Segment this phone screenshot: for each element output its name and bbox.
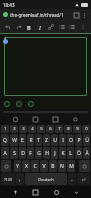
button[interactable]: Bold — [24, 22, 34, 32]
button[interactable]: Overflow — [78, 22, 88, 32]
button[interactable]: X — [22, 160, 30, 172]
button[interactable]: D — [19, 147, 26, 159]
button[interactable]: V — [40, 160, 48, 172]
button[interactable]: Action 1 — [4, 101, 10, 107]
button[interactable]: H — [43, 147, 50, 159]
button[interactable]: 2 — [10, 125, 18, 133]
staticText: 4 — [31, 126, 34, 132]
button[interactable]: Action 3 — [28, 101, 34, 107]
button[interactable]: C — [31, 160, 39, 172]
button[interactable]: N — [58, 160, 66, 172]
button[interactable]: Italic — [35, 22, 45, 32]
button[interactable]: 6 — [46, 125, 54, 133]
staticText: X — [25, 163, 28, 170]
button[interactable]: Link — [46, 22, 56, 32]
button[interactable]: Y — [14, 160, 21, 172]
staticText: 2 — [13, 126, 16, 132]
button[interactable]: M — [67, 160, 75, 172]
button[interactable]: Undo — [3, 22, 13, 32]
button[interactable]: R — [27, 134, 34, 146]
button[interactable]: T — [35, 134, 42, 146]
button[interactable]: . — [68, 173, 76, 185]
staticText: Ö — [77, 150, 81, 157]
staticText: , — [19, 176, 21, 183]
button[interactable] — [4, 37, 87, 96]
button[interactable]: Ü — [83, 134, 90, 146]
staticText: W — [12, 137, 17, 144]
button[interactable]: Redo — [14, 22, 24, 32]
button[interactable]: Clipboard — [51, 115, 60, 124]
staticText: P — [77, 137, 81, 144]
button[interactable]: Settings — [71, 115, 80, 124]
button[interactable]: Recents — [30, 187, 40, 197]
button[interactable]: Q — [1, 134, 9, 146]
button[interactable]: Emoji — [11, 115, 20, 124]
staticText: 0 — [85, 126, 88, 132]
button[interactable]: P — [75, 134, 82, 146]
button[interactable]: Home — [51, 187, 61, 197]
staticText: B — [51, 163, 55, 170]
staticText: 9 — [76, 126, 79, 132]
staticText: Deutsch — [38, 177, 54, 182]
staticText: T — [37, 137, 40, 144]
button[interactable]: I — [59, 134, 66, 146]
button[interactable]: G — [35, 147, 42, 159]
button[interactable]: More options — [80, 11, 88, 19]
staticText: L — [69, 150, 72, 157]
staticText: U — [53, 137, 57, 144]
button[interactable]: 5 — [37, 125, 45, 133]
staticText: O — [69, 137, 73, 144]
button[interactable]: , — [16, 173, 24, 185]
staticText: S — [13, 150, 16, 157]
button[interactable]: GIF — [31, 115, 40, 124]
button[interactable]: 9 — [73, 125, 81, 133]
button[interactable]: Backspace — [79, 160, 90, 172]
button[interactable]: A — [1, 147, 9, 159]
staticText: 3 — [22, 126, 25, 132]
button[interactable]: E — [19, 134, 26, 146]
button[interactable]: Z — [43, 134, 50, 146]
staticText: 18:43 — [3, 2, 15, 8]
button[interactable]: Tabs — [72, 11, 80, 19]
staticText: V — [42, 163, 46, 170]
button[interactable]: Ö — [75, 147, 82, 159]
button[interactable]: L — [67, 147, 74, 159]
button[interactable]: 4 — [28, 125, 36, 133]
button[interactable]: W — [10, 134, 18, 146]
button[interactable]: 0 — [82, 125, 90, 133]
button[interactable]: K — [59, 147, 66, 159]
button[interactable]: Deutsch — [25, 173, 67, 185]
button[interactable]: B — [49, 160, 57, 172]
button[interactable]: Ä — [83, 147, 90, 159]
button[interactable]: 8 — [64, 125, 72, 133]
staticText: F — [29, 150, 32, 157]
staticText: J — [54, 150, 56, 157]
button[interactable]: Enter — [77, 173, 90, 185]
staticText: H — [45, 150, 49, 157]
staticText: C — [33, 163, 37, 170]
button[interactable]: Action 2 — [16, 101, 22, 107]
button[interactable]: ?123 — [1, 173, 15, 185]
button[interactable]: 1 — [1, 125, 9, 133]
button[interactable]: 7 — [55, 125, 63, 133]
staticText: 8 — [67, 126, 70, 132]
staticText: 6 — [49, 126, 52, 132]
button[interactable]: J — [51, 147, 58, 159]
staticText: I — [62, 137, 64, 144]
button[interactable]: Back — [71, 187, 81, 197]
staticText: B — [27, 24, 31, 31]
button[interactable]: Voice input — [10, 187, 20, 197]
button[interactable]: F — [27, 147, 34, 159]
staticText: Q — [3, 137, 7, 144]
staticText: A — [3, 150, 7, 157]
button[interactable]: Bulleted list — [57, 22, 67, 32]
button[interactable]: Shift — [1, 160, 11, 172]
button[interactable]: U — [51, 134, 58, 146]
button[interactable]: O — [67, 134, 74, 146]
staticText: 5 — [40, 126, 43, 132]
button[interactable]: 3 — [19, 125, 27, 133]
staticText: . — [71, 176, 73, 183]
button[interactable]: S — [10, 147, 18, 159]
button[interactable]: Numbered list — [67, 22, 77, 32]
button[interactable]: Site info — [3, 12, 8, 17]
